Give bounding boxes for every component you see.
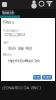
button[interactable]: Vellum — [17, 59, 24, 63]
button[interactable]: Account — [30, 0, 38, 8]
button[interactable]: 2016 — 2024 — [8, 33, 21, 37]
staticText: Book — [8, 47, 15, 50]
staticText: Publication — [3, 29, 19, 32]
button[interactable]: Search — [42, 75, 52, 80]
button[interactable]: Book — [8, 46, 16, 51]
staticText: LEONARDO DA VINCI — [1, 85, 40, 90]
button[interactable]: Wood — [25, 59, 32, 63]
staticText: Wood — [25, 59, 33, 63]
staticText: Reset — [33, 75, 41, 79]
staticText: Search — [43, 75, 51, 79]
staticText: Vellum — [16, 59, 26, 63]
button[interactable]: Home — [0, 0, 9, 9]
button[interactable]: Ink — [33, 59, 40, 63]
staticText: Paper — [8, 59, 16, 63]
button[interactable]: Note — [25, 46, 32, 51]
button[interactable]: Essay — [17, 46, 24, 51]
staticText: Filters — [3, 19, 14, 24]
staticText: Note — [25, 47, 32, 50]
button[interactable]: Reset — [33, 75, 41, 80]
staticText: Media — [3, 53, 11, 56]
button[interactable]: Search — [2, 10, 14, 15]
button[interactable]: Filter — [46, 0, 53, 8]
staticText: Type — [3, 41, 9, 44]
staticText: Search — [2, 10, 14, 15]
staticText: 2016 — 2024 — [4, 33, 25, 37]
button[interactable]: Help — [37, 0, 45, 8]
staticText: Ink — [35, 59, 39, 63]
staticText: Essay — [18, 47, 23, 50]
button[interactable]: Paper — [8, 59, 16, 63]
